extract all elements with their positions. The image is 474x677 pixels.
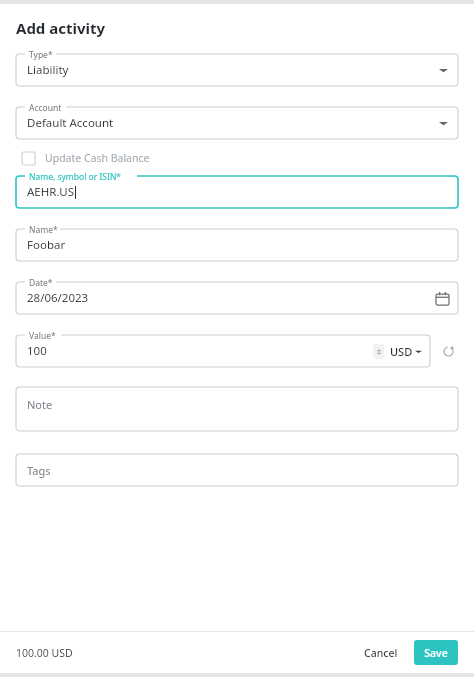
staticText: Tags xyxy=(27,463,51,478)
button[interactable]: Update Cash Balance xyxy=(22,147,156,169)
staticText: Type* xyxy=(29,49,53,61)
staticText: AEHR.US xyxy=(27,184,74,200)
staticText: 100.00 USD xyxy=(16,646,73,660)
staticText: Note xyxy=(27,397,53,412)
button[interactable]: Cancel xyxy=(358,642,404,664)
staticText: Date* xyxy=(29,277,53,289)
button[interactable]: Refresh exchange rate xyxy=(438,341,458,361)
button[interactable]: Increment or decrement value xyxy=(373,344,384,359)
staticText: 28/06/2023 xyxy=(27,290,89,306)
staticText: Default Account xyxy=(27,115,114,131)
staticText: Liability xyxy=(27,62,69,78)
button[interactable]: Date* xyxy=(16,282,458,314)
button[interactable]: Pick date xyxy=(432,288,452,308)
button[interactable]: Name, symbol or ISIN* xyxy=(16,176,458,208)
staticText: Cancel xyxy=(364,646,398,660)
staticText: Value* xyxy=(29,330,56,342)
button[interactable]: Tags xyxy=(16,454,458,486)
staticText: Update Cash Balance xyxy=(45,151,150,165)
staticText: USD xyxy=(390,344,413,359)
button[interactable]: Open dropdown xyxy=(434,61,452,79)
staticText: Name, symbol or ISIN* xyxy=(29,171,122,183)
button[interactable]: Name* xyxy=(16,229,458,261)
staticText: Name* xyxy=(29,224,58,236)
button[interactable]: USD xyxy=(390,344,422,359)
staticText: Save xyxy=(424,646,448,660)
button[interactable]: Account xyxy=(16,107,458,139)
button[interactable]: Open dropdown xyxy=(434,114,452,132)
staticText: 100 xyxy=(27,343,47,359)
staticText: Foobar xyxy=(27,237,66,253)
staticText: Add activity xyxy=(16,18,106,38)
staticText: Account xyxy=(29,102,62,114)
button[interactable]: Type* xyxy=(16,54,458,86)
button[interactable]: Value* xyxy=(16,335,430,367)
button[interactable]: Note xyxy=(16,387,458,431)
button[interactable]: Save xyxy=(414,640,458,665)
